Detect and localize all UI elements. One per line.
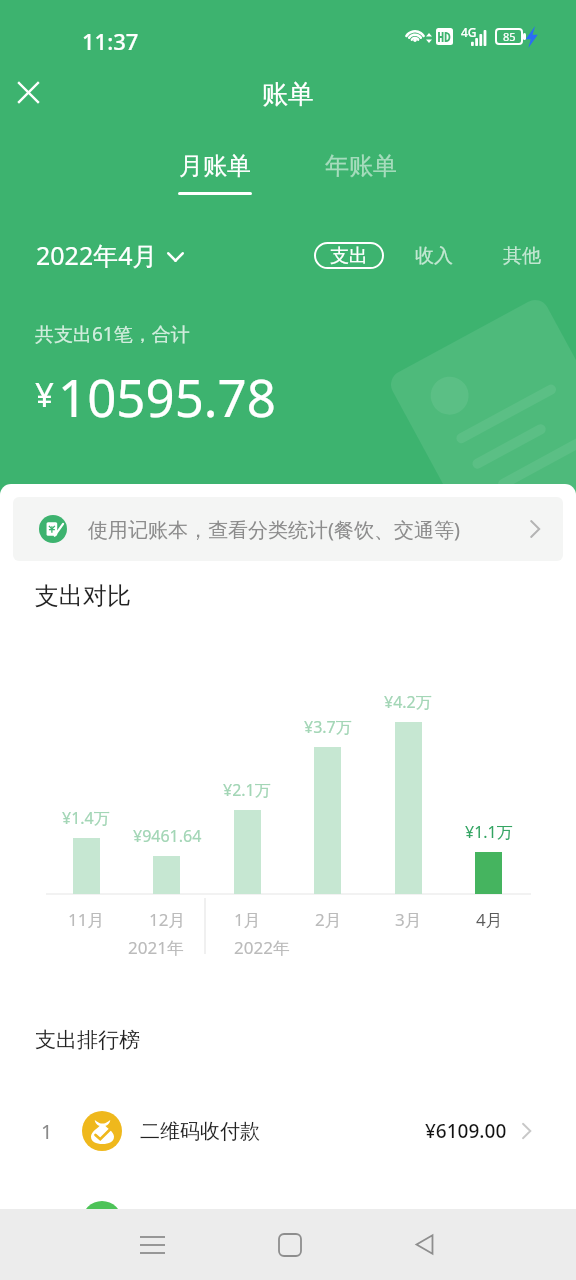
- staticText: ¥: [35, 372, 54, 417]
- button[interactable]: 2022年4月: [36, 238, 184, 272]
- button[interactable]: 年账单: [321, 151, 401, 181]
- staticText: 其他: [503, 244, 541, 268]
- button[interactable]: 使用记账本，查看分类统计(餐饮、交通等): [13, 497, 563, 561]
- staticText: 12月: [149, 908, 186, 931]
- button[interactable]: 支出: [314, 242, 384, 269]
- staticText: 支出: [330, 244, 368, 268]
- button[interactable]: 月账单: [175, 151, 255, 195]
- staticText: 共支出61笔，合计: [35, 321, 190, 347]
- staticText: 4月: [476, 908, 503, 931]
- staticText: 账单: [262, 78, 314, 111]
- staticText: ¥9461.64: [133, 825, 202, 847]
- staticText: 3月: [395, 908, 422, 931]
- button[interactable]: Close: [0, 62, 58, 122]
- staticText: ¥6109.00: [425, 1118, 507, 1144]
- staticText: ¥4.2万: [384, 691, 432, 713]
- staticText: ¥1.1万: [465, 821, 513, 843]
- button[interactable]: 收入: [414, 242, 454, 269]
- staticText: 支出排行榜: [35, 1027, 140, 1053]
- staticText: 10595.78: [58, 362, 276, 431]
- staticText: ¥2.1万: [223, 779, 271, 801]
- staticText: ¥1.4万: [62, 807, 110, 829]
- button[interactable]: Home: [260, 1209, 320, 1280]
- staticText: 4G: [461, 24, 477, 40]
- button[interactable]: Back: [394, 1209, 454, 1280]
- staticText: ¥3.7万: [304, 716, 352, 738]
- staticText: 使用记账本，查看分类统计(餐饮、交通等): [88, 516, 460, 543]
- staticText: 月账单: [179, 151, 251, 181]
- staticText: 二维码收付款: [140, 1119, 260, 1144]
- button[interactable]: 1: [0, 1101, 576, 1161]
- button[interactable]: Recents: [122, 1209, 182, 1280]
- staticText: 1月: [234, 908, 261, 931]
- staticText: 85: [503, 29, 516, 44]
- staticText: 1: [41, 1118, 53, 1145]
- staticText: 年账单: [325, 151, 397, 181]
- staticText: 支出对比: [35, 581, 131, 611]
- button[interactable]: 其他: [502, 242, 542, 269]
- staticText: 11:37: [82, 26, 139, 56]
- staticText: 2022年: [234, 936, 290, 959]
- staticText: 2022年4月: [36, 238, 158, 272]
- staticText: 2021年: [128, 936, 184, 959]
- staticText: 11月: [68, 908, 105, 931]
- staticText: 收入: [415, 244, 453, 268]
- staticText: 2月: [315, 908, 342, 931]
